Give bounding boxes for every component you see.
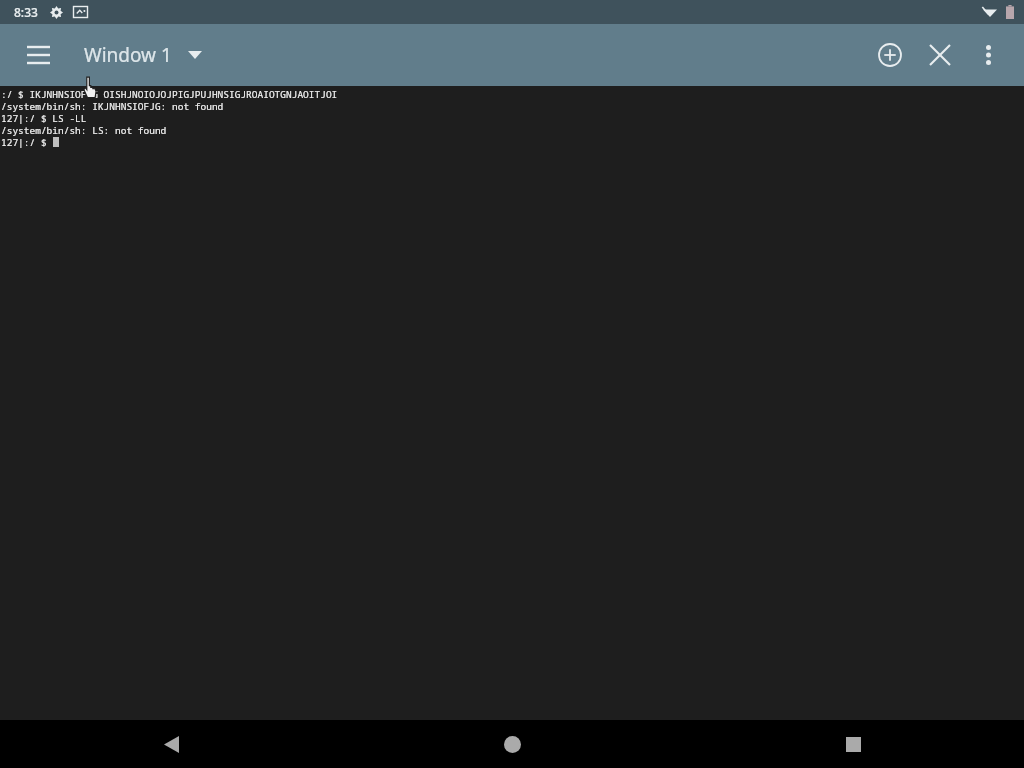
button[interactable]: More options	[966, 33, 1010, 77]
staticText: /system/bin/sh: IKJNHNSIOFJG: not found	[1, 100, 224, 112]
button[interactable]: Home	[342, 720, 683, 768]
other: Settings	[50, 6, 63, 19]
button[interactable]: Open navigation drawer	[18, 35, 58, 75]
staticText: /system/bin/sh: LS: not found	[1, 124, 167, 136]
button[interactable]: Recent apps	[683, 720, 1024, 768]
other: Screenshot	[73, 6, 88, 18]
other: Battery	[1006, 5, 1014, 19]
button[interactable]: Close window	[918, 33, 962, 77]
staticText: 127|:/ $ LS -LL	[1, 112, 87, 124]
other: Wi-Fi disconnected	[982, 6, 998, 18]
button[interactable]: New window	[868, 33, 912, 77]
staticText: :/ $ IKJNHNSIOFJG OISHJNOIOJOJPIGJPUJHNS…	[1, 88, 338, 100]
button[interactable]: Back	[0, 720, 342, 768]
button[interactable]: Window 1	[80, 36, 206, 74]
staticText: Window 1	[84, 42, 172, 68]
staticText: 8:33	[14, 4, 38, 20]
button[interactable]: :/ $ IKJNHNSIOFJG OISHJNOIOJOJPIGJPUJHNS…	[0, 86, 1024, 720]
staticText: 127|:/ $	[1, 136, 53, 148]
